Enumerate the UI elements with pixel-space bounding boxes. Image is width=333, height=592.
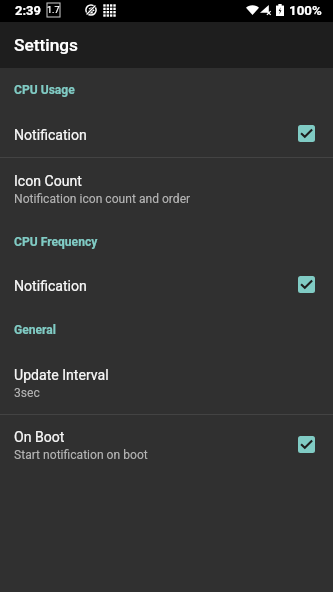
staticText: Notification [14, 127, 298, 144]
staticText: CPU Frequency [14, 235, 98, 249]
staticText: Update Interval [14, 367, 109, 384]
staticText: Notification [14, 278, 298, 295]
button[interactable]: Notification [0, 263, 333, 308]
staticText: Settings [14, 35, 79, 55]
other: Apps [103, 4, 116, 17]
staticText: General [14, 323, 56, 337]
staticText: Notification icon count and order [14, 192, 191, 206]
button[interactable]: Notification [0, 112, 333, 157]
button[interactable]: Toggle On Boot [298, 436, 315, 453]
other: Auto-rotate off [85, 4, 97, 16]
staticText: On Boot [14, 429, 65, 446]
staticText: 100% [289, 3, 322, 19]
other: Wi-Fi [246, 5, 259, 15]
staticText: CPU Usage [14, 83, 75, 97]
other: No mobile data [260, 5, 271, 15]
staticText: Start notification on boot [14, 448, 148, 462]
button[interactable]: Update Interval [0, 352, 333, 414]
other: Battery 100 percent [276, 4, 284, 16]
button[interactable]: On Boot [0, 415, 333, 476]
button[interactable]: Toggle Notification [298, 125, 315, 142]
button[interactable]: Icon Count [0, 158, 333, 220]
staticText: Icon Count [14, 173, 82, 190]
button[interactable]: Toggle Notification [298, 276, 315, 293]
staticText: 3sec [14, 386, 40, 400]
staticText: 1.7 [47, 5, 60, 16]
staticText: 2:39 [15, 3, 42, 18]
